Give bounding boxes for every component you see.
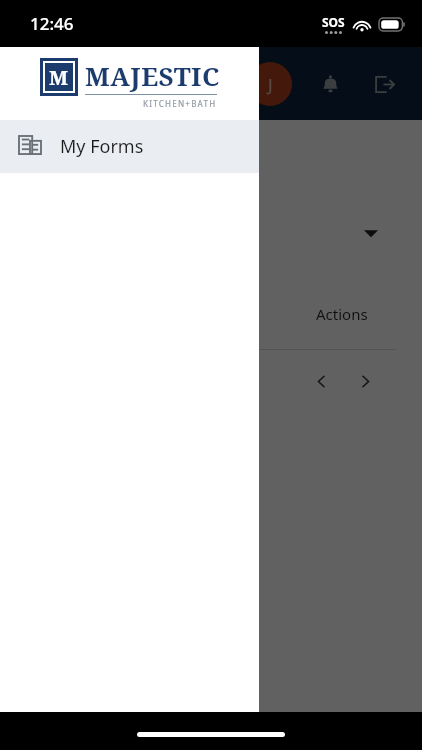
button[interactable] — [26, 203, 396, 263]
staticText: M — [49, 64, 69, 91]
button[interactable]: Next page — [348, 364, 382, 398]
button[interactable]: Previous page — [304, 364, 338, 398]
staticText: MAJESTIC — [85, 58, 220, 93]
staticText: My Forms — [60, 134, 144, 159]
staticText: Actions — [316, 304, 368, 324]
staticText: J — [268, 73, 273, 96]
button[interactable]: J — [248, 62, 292, 106]
staticText: 12:46 — [30, 12, 74, 35]
staticText: KITCHEN+BATH — [143, 98, 217, 109]
button[interactable]: Notifications — [312, 66, 348, 102]
staticText: SOS — [322, 14, 345, 30]
button[interactable]: Log out — [366, 66, 402, 102]
button[interactable]: My Forms — [0, 120, 259, 173]
